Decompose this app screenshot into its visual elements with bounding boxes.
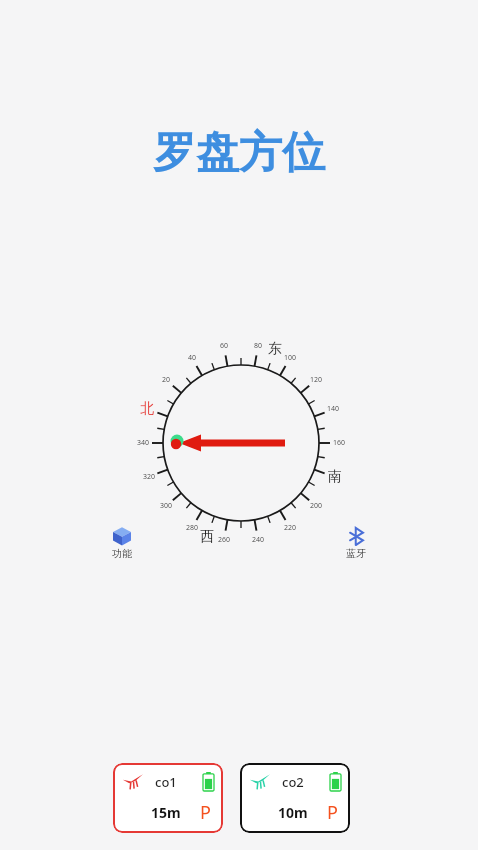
staticText: co2 — [282, 773, 304, 791]
staticText: 罗盘方位 — [0, 126, 478, 180]
button[interactable]: 蓝牙 — [344, 525, 368, 562]
staticText: 南 — [328, 468, 342, 486]
staticText: co1 — [155, 773, 177, 791]
staticText: 340 — [137, 438, 150, 448]
staticText: 20 — [162, 375, 171, 385]
staticText: 40 — [188, 353, 197, 363]
staticText: P — [200, 800, 211, 825]
staticText: 140 — [327, 404, 340, 414]
button[interactable]: 功能 — [110, 524, 134, 562]
staticText: 220 — [284, 523, 297, 533]
staticText: 功能 — [112, 547, 132, 560]
button[interactable]: co1 — [113, 763, 223, 833]
staticText: 200 — [310, 501, 323, 511]
staticText: 240 — [252, 535, 265, 545]
staticText: 10m — [278, 803, 308, 822]
staticText: 15m — [151, 803, 181, 822]
staticText: P — [327, 800, 338, 825]
staticText: 320 — [143, 472, 156, 482]
staticText: 300 — [160, 501, 173, 511]
button[interactable]: co2 — [240, 763, 350, 833]
staticText: 280 — [186, 523, 199, 533]
staticText: 东 — [268, 340, 282, 358]
staticText: 160 — [333, 438, 346, 448]
staticText: 西 — [200, 528, 214, 546]
staticText: 260 — [218, 535, 231, 545]
staticText: 北 — [140, 400, 154, 418]
staticText: 100 — [284, 353, 297, 363]
staticText: 蓝牙 — [346, 547, 366, 560]
staticText: 60 — [220, 341, 229, 351]
staticText: 80 — [254, 341, 263, 351]
staticText: 120 — [310, 375, 323, 385]
